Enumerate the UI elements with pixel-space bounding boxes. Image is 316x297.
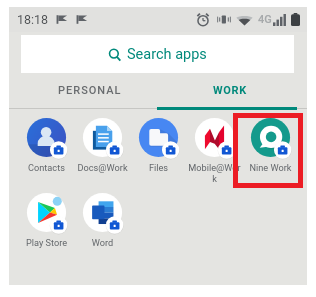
staticText: Mobile@Work bbox=[188, 162, 241, 184]
staticText: Nine Work bbox=[244, 162, 297, 173]
button[interactable]: Word bbox=[74, 192, 130, 248]
staticText: Docs@Work bbox=[76, 162, 129, 173]
button[interactable]: PERSONAL bbox=[20, 75, 160, 105]
staticText: PERSONAL bbox=[58, 84, 122, 97]
staticText: WORK bbox=[213, 84, 248, 97]
button[interactable]: Nine Work bbox=[242, 117, 298, 173]
button[interactable]: Search apps bbox=[21, 35, 294, 73]
staticText: Play Store bbox=[20, 237, 73, 248]
button[interactable]: Play Store bbox=[18, 192, 74, 248]
button[interactable]: Docs@Work bbox=[74, 117, 130, 173]
staticText: Search apps bbox=[127, 46, 207, 63]
button[interactable]: Contacts bbox=[18, 117, 74, 173]
staticText: Files bbox=[132, 162, 185, 173]
button[interactable]: WORK bbox=[160, 75, 300, 105]
staticText: 4G bbox=[258, 13, 272, 26]
button[interactable]: Mobile@Work bbox=[186, 117, 242, 184]
staticText: Contacts bbox=[20, 162, 73, 173]
staticText: Word bbox=[76, 237, 129, 248]
button[interactable]: Files bbox=[130, 117, 186, 173]
staticText: 18:18 bbox=[17, 12, 49, 27]
